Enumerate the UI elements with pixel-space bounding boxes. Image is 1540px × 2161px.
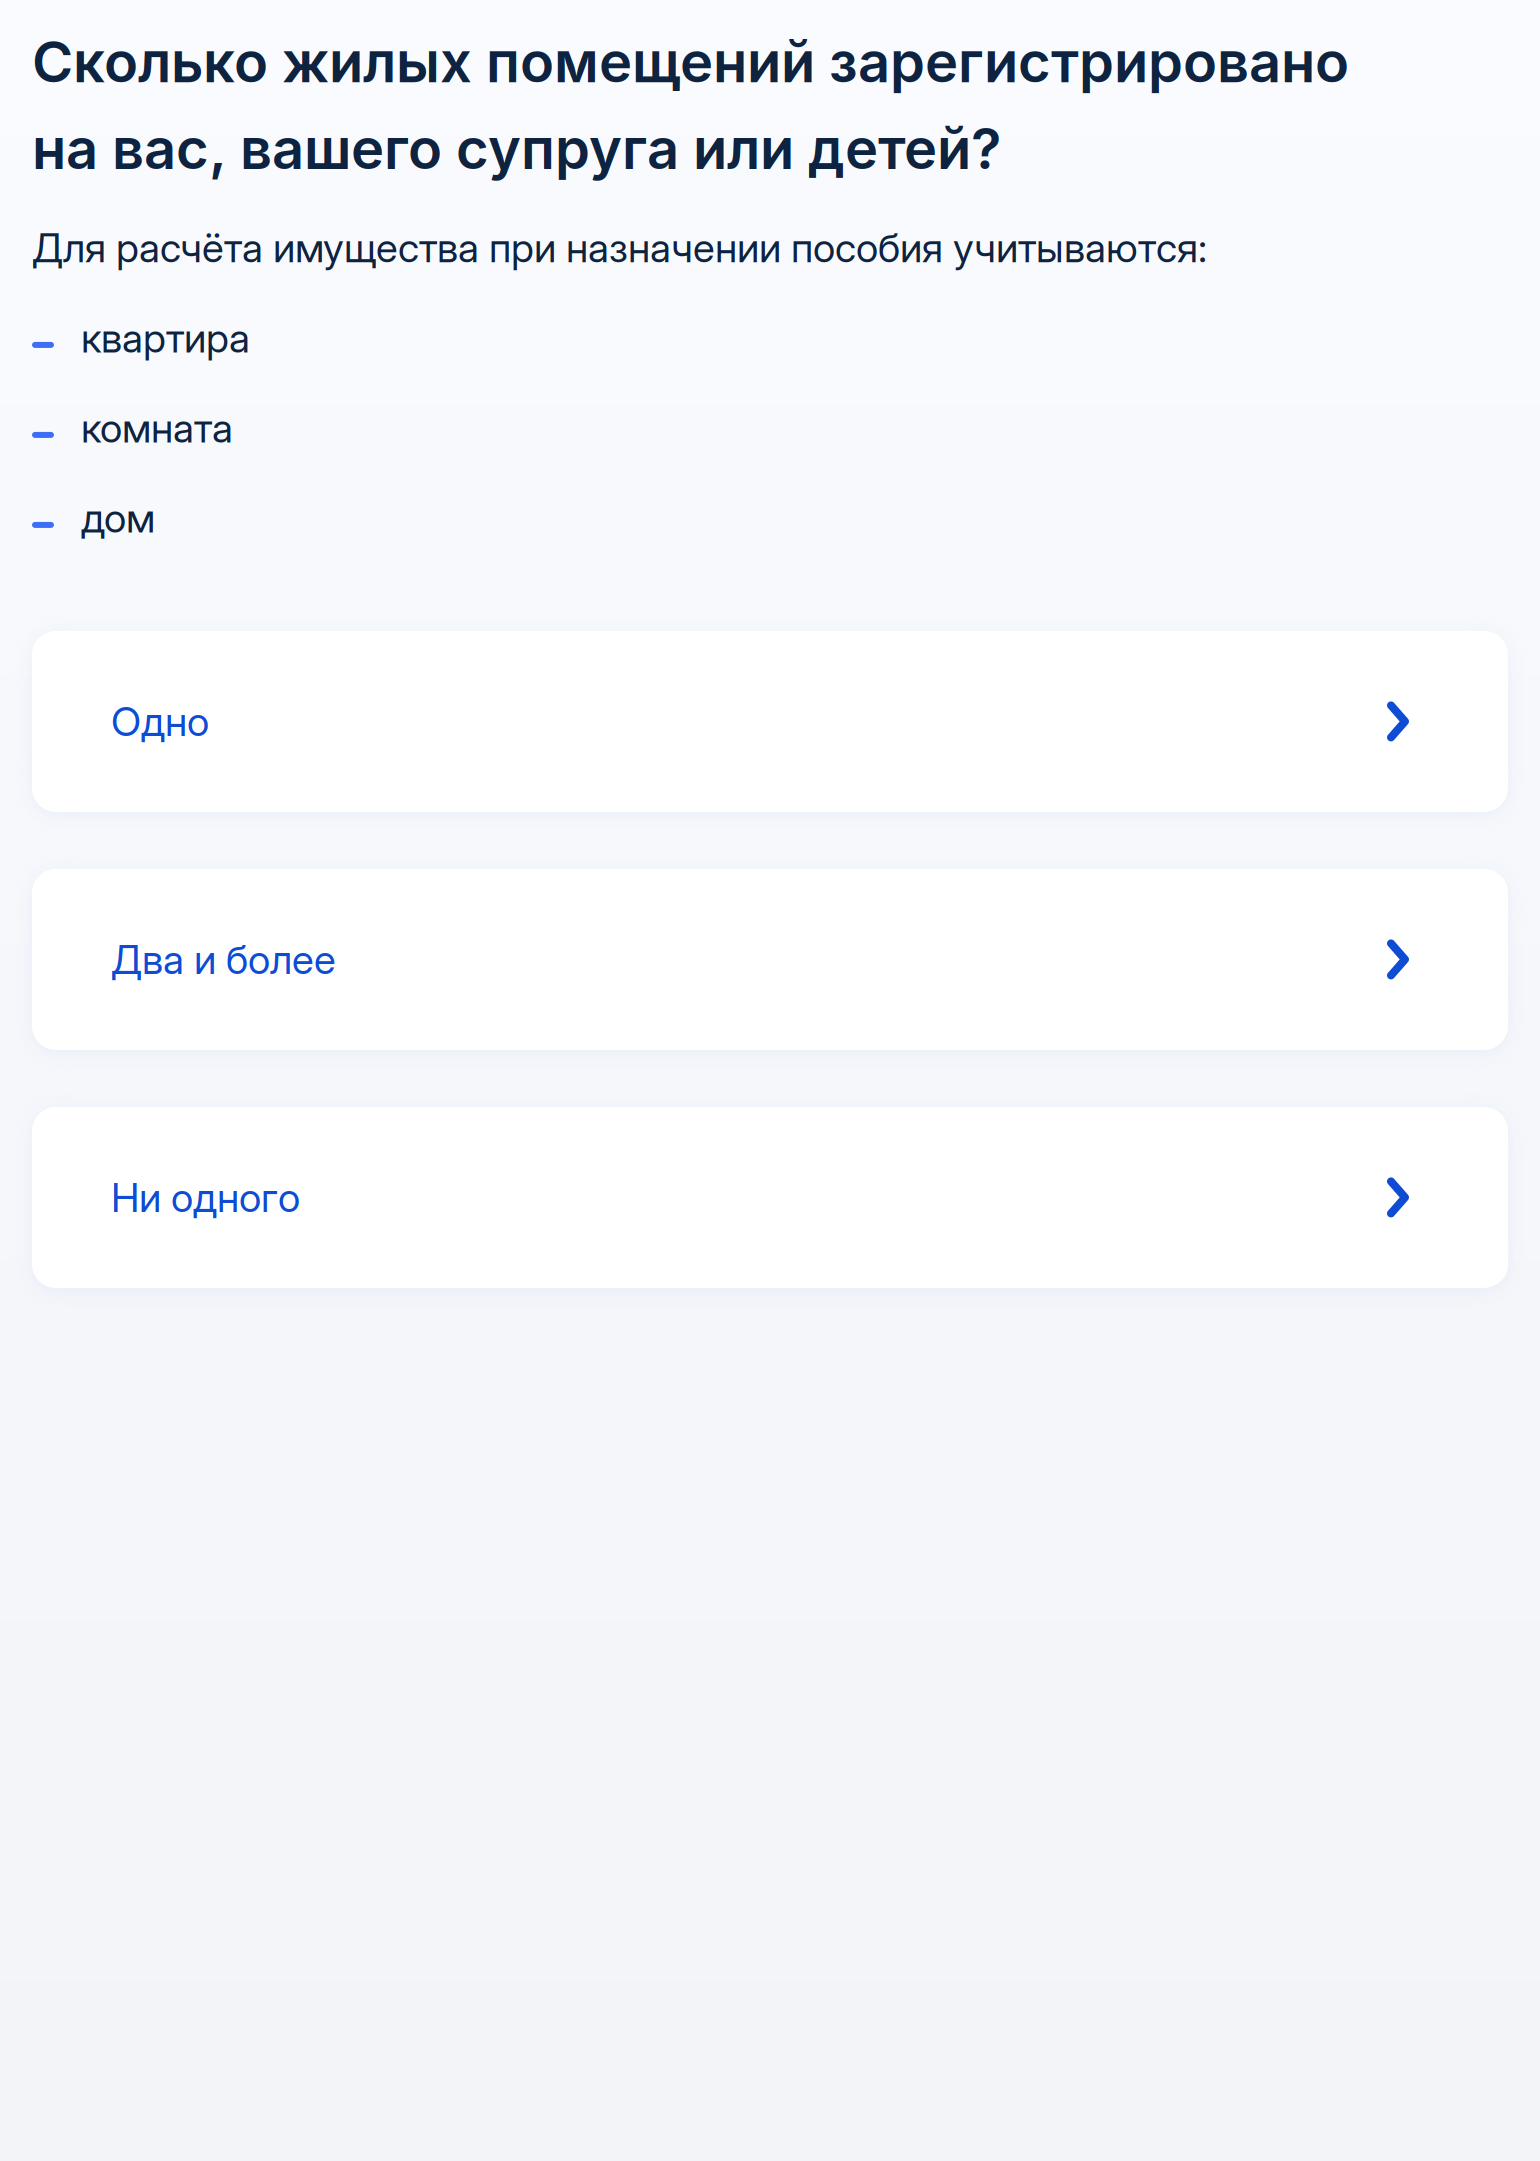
button[interactable]: Ни одного — [32, 1107, 1508, 1288]
staticText: квартира — [81, 314, 250, 362]
staticText: дом — [81, 494, 155, 542]
staticText: Два и более — [111, 935, 336, 984]
staticText: Одно — [111, 697, 209, 746]
button[interactable]: Одно — [32, 631, 1508, 812]
staticText: Для расчёта имущества при назначении пос… — [32, 223, 1207, 272]
staticText: Сколько жилых помещений зарегистрировано… — [32, 28, 1349, 182]
button[interactable]: Два и более — [32, 869, 1508, 1050]
staticText: Ни одного — [111, 1173, 300, 1222]
staticText: комната — [81, 404, 233, 452]
